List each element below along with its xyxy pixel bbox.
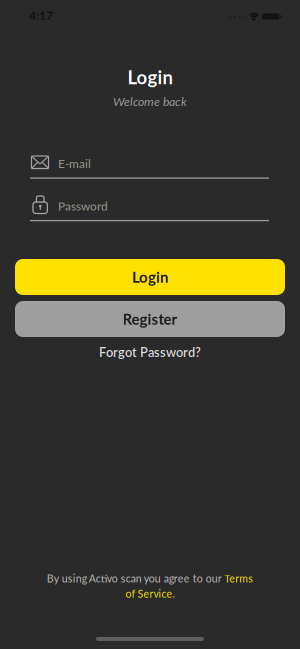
textField[interactable]: E-mail bbox=[58, 156, 269, 170]
staticText: Login bbox=[127, 66, 172, 88]
staticText: Password bbox=[58, 199, 108, 213]
button[interactable]: Terms of Service bbox=[47, 572, 253, 600]
staticText: Terms bbox=[224, 572, 253, 585]
button[interactable]: Login bbox=[15, 259, 285, 295]
staticText: E-mail bbox=[58, 156, 91, 170]
staticText: Forgot Password? bbox=[99, 344, 201, 360]
staticText: Register bbox=[122, 310, 177, 328]
staticText: Login bbox=[132, 268, 168, 286]
staticText: of Service. bbox=[125, 587, 174, 600]
button[interactable]: Register bbox=[15, 301, 285, 337]
staticText: 4:17 bbox=[29, 8, 53, 22]
button[interactable]: Forgot Password? bbox=[99, 344, 201, 360]
staticText: Welcome back bbox=[113, 94, 187, 109]
staticText: By using Activo scan you agree to our bbox=[47, 572, 222, 585]
textField[interactable]: Password bbox=[58, 199, 269, 213]
